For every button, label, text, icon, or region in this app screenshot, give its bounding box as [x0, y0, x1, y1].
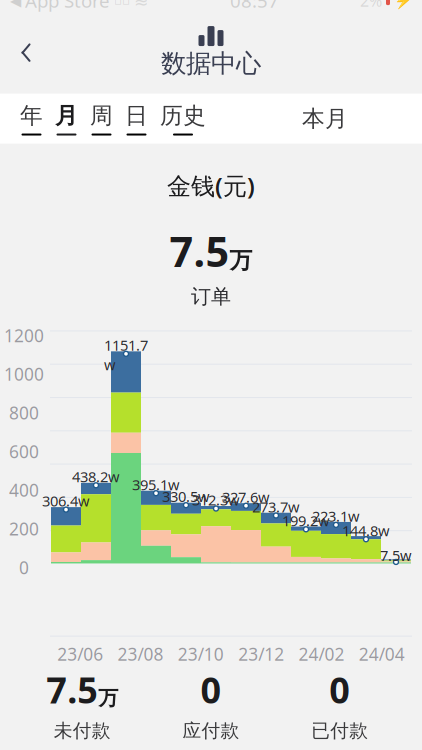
staticText: ⚡ [394, 0, 412, 9]
button[interactable]: 本月 [288, 94, 362, 144]
staticText: 273.7w [252, 497, 300, 516]
button[interactable]: 周 [84, 94, 119, 144]
staticText: 0 [200, 666, 221, 713]
staticText: 199.2w [282, 511, 330, 530]
staticText: 月 [55, 102, 78, 129]
staticText: 订单 [191, 284, 231, 309]
staticText: 0 [19, 556, 29, 579]
staticText: 万 [98, 686, 118, 710]
staticText: 327.6w [222, 487, 270, 507]
staticText: 本月 [302, 105, 348, 132]
staticText: 0 [329, 666, 350, 713]
staticText: 1200 [4, 324, 44, 347]
staticText: 日 [125, 102, 148, 129]
staticText: 2% [360, 0, 382, 11]
staticText: 1151.7w [104, 335, 148, 374]
staticText: 23/12 [238, 643, 284, 666]
staticText: ≋ [134, 0, 149, 10]
staticText: 23/06 [57, 643, 103, 666]
staticText: 800 [9, 401, 39, 424]
staticText: 年 [20, 102, 43, 129]
staticText: 周 [90, 102, 113, 129]
staticText: 23/10 [178, 643, 224, 666]
staticText: 应付款 [182, 719, 239, 742]
staticText: 395.1w [132, 475, 180, 494]
staticText: 144.8w [342, 521, 390, 540]
staticText: 金钱(元) [167, 170, 255, 201]
staticText: 08:57 [230, 0, 279, 13]
staticText: 600 [9, 440, 39, 463]
button[interactable]: 历史 [154, 94, 212, 144]
staticText: 24/04 [359, 643, 405, 666]
staticText: 438.2w [72, 467, 120, 486]
staticText: 已付款 [311, 719, 368, 742]
staticText: 历史 [160, 102, 206, 129]
staticText: 200 [9, 517, 39, 540]
button[interactable]: Back [10, 35, 42, 71]
staticText: 1000 [4, 363, 44, 386]
staticText: ◀ [10, 0, 21, 9]
staticText: 7.5w [380, 545, 412, 565]
staticText: 312.3w [192, 490, 240, 509]
staticText: App Store [25, 0, 110, 13]
staticText: 万 [229, 246, 252, 274]
staticText: 7.5 [169, 223, 229, 278]
staticText: ▫▫ [114, 0, 130, 7]
staticText: 7.5 [46, 666, 98, 713]
button[interactable]: 日 [119, 94, 154, 144]
button[interactable]: 年 [14, 94, 49, 144]
staticText: 223.1w [312, 506, 360, 526]
staticText: 400 [9, 479, 39, 502]
staticText: 数据中心 [161, 48, 261, 79]
staticText: 330.5w [162, 487, 210, 506]
staticText: 未付款 [54, 719, 111, 742]
button[interactable]: 月 [49, 94, 84, 144]
staticText: 23/08 [117, 643, 163, 666]
staticText: 24/02 [298, 643, 344, 666]
staticText: 306.4w [42, 491, 90, 511]
